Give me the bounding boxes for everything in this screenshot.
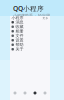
staticText: 相册 — [15, 29, 23, 34]
staticText: 文件 — [15, 33, 23, 38]
staticText: 收藏 — [15, 24, 23, 29]
staticText: 帮助 — [15, 42, 23, 47]
staticText: 小程序 — [11, 15, 23, 20]
staticText: 更多 — [42, 16, 48, 20]
button[interactable]: Tab 1 — [10, 88, 20, 98]
button[interactable]: 设置 — [10, 38, 50, 42]
staticText: 关于 — [15, 47, 23, 52]
staticText: 小程序助手 · 轻应用 — [13, 13, 50, 18]
button[interactable]: Tab 2 — [20, 88, 30, 98]
button[interactable]: Tab 3 — [30, 88, 40, 98]
button[interactable]: 文件 — [10, 33, 50, 38]
button[interactable]: 帮助 — [10, 42, 50, 47]
button[interactable]: 收藏 — [10, 24, 50, 29]
staticText: 设置 — [15, 38, 23, 43]
staticText: 消息 — [15, 20, 23, 25]
button[interactable]: 相册 — [10, 29, 50, 33]
button[interactable]: 关于 — [10, 47, 50, 51]
button[interactable]: Tab 4 — [40, 88, 50, 98]
staticText: QQ小程序 — [13, 4, 44, 13]
button[interactable]: 消息 — [10, 20, 50, 24]
